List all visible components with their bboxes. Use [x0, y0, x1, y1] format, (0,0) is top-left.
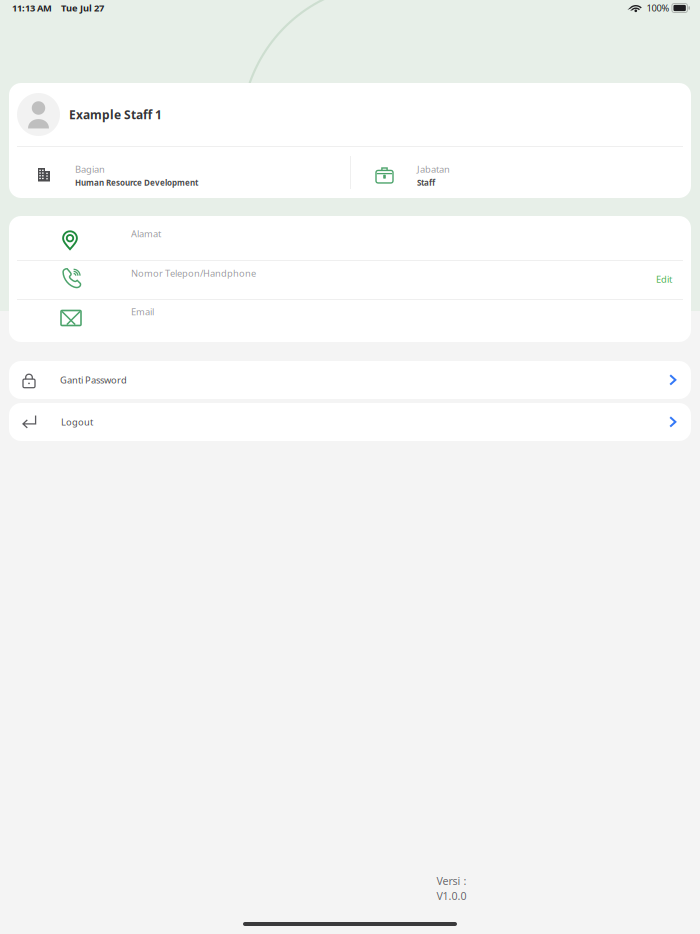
button[interactable]: Ganti Password [9, 361, 691, 399]
staticText: Bagian [75, 163, 105, 175]
staticText: 11:13 AM [12, 2, 52, 14]
staticText: Human Resource Development [75, 177, 198, 188]
staticText: V1.0.0 [436, 889, 466, 903]
button[interactable]: Logout [9, 403, 691, 441]
staticText: Logout [61, 416, 93, 428]
staticText: Nomor Telepon/Handphone [131, 267, 256, 279]
staticText: Email [131, 305, 154, 318]
staticText: Alamat [131, 227, 161, 240]
staticText: Versi : [436, 874, 466, 888]
button[interactable]: Edit [648, 268, 680, 290]
staticText: Tue Jul 27 [61, 2, 104, 14]
staticText: 100% [646, 2, 669, 14]
staticText: Ganti Password [60, 374, 127, 386]
staticText: Example Staff 1 [69, 106, 162, 122]
staticText: Edit [656, 273, 672, 285]
staticText: Staff [417, 177, 435, 188]
staticText: Jabatan [417, 163, 450, 175]
